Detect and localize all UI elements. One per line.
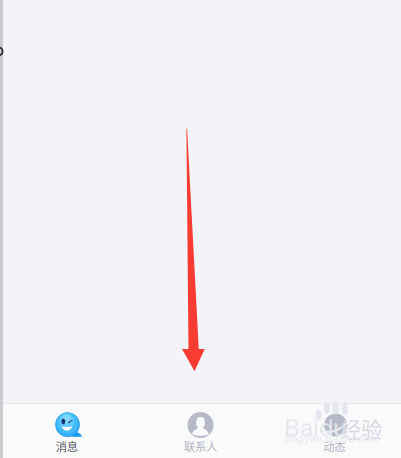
- button[interactable]: 动态: [267, 404, 401, 458]
- staticText: 消息: [56, 438, 78, 454]
- button[interactable]: 消息: [0, 404, 134, 458]
- staticText: Baidu: [284, 413, 347, 442]
- button[interactable]: 联系人: [134, 404, 267, 458]
- staticText: jingyan.baidu.com: [285, 432, 378, 445]
- staticText: 联系人: [184, 438, 217, 454]
- staticText: 动态: [323, 438, 345, 454]
- staticText: 经验: [340, 413, 382, 444]
